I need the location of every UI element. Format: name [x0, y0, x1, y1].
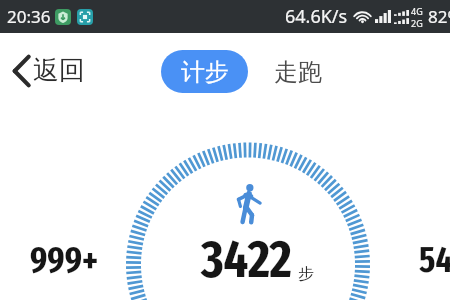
staticText: 步: [298, 264, 314, 284]
other: Security: [55, 9, 71, 25]
staticText: 54: [419, 238, 450, 281]
staticText: 64.6K/s: [285, 4, 348, 29]
staticText: 20:36: [7, 5, 51, 28]
button[interactable]: 计步: [161, 50, 248, 93]
other: Scan code: [77, 9, 93, 25]
button[interactable]: 返回: [6, 49, 91, 92]
staticText: 999+: [30, 238, 99, 281]
staticText: 4G: [411, 5, 423, 17]
staticText: 2G: [411, 17, 423, 29]
button[interactable]: 走跑: [266, 50, 330, 93]
staticText: 走跑: [274, 57, 322, 87]
staticText: 82%: [428, 5, 450, 28]
staticText: 返回: [33, 54, 85, 87]
staticText: 3422: [201, 228, 292, 290]
staticText: 计步: [181, 57, 229, 87]
